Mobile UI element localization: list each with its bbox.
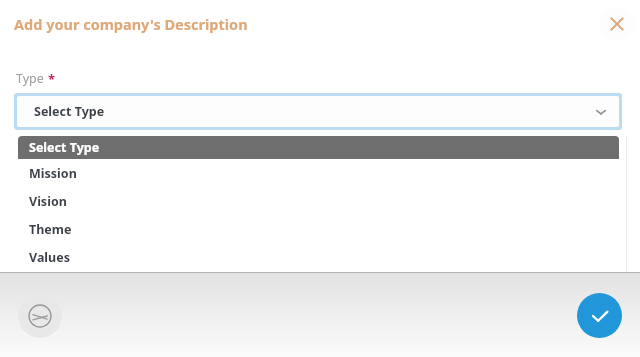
staticText: Type <box>16 70 44 87</box>
staticText: Add your company's Description <box>14 14 248 34</box>
staticText: Mission <box>29 165 77 182</box>
staticText: Select Type <box>34 103 105 120</box>
button[interactable]: Values <box>18 243 619 271</box>
staticText: Values <box>29 249 70 266</box>
staticText: Vision <box>29 193 67 210</box>
button[interactable]: Theme <box>18 215 619 243</box>
staticText: Theme <box>29 221 72 238</box>
button[interactable]: Close <box>600 7 634 41</box>
staticText: * <box>48 70 56 88</box>
button[interactable]: Confirm <box>577 293 622 338</box>
button[interactable]: Attachment <box>18 294 62 338</box>
button[interactable]: Vision <box>18 187 619 215</box>
staticText: Select Type <box>29 139 100 156</box>
button[interactable]: Mission <box>18 159 619 187</box>
button[interactable]: Select Type <box>18 136 619 159</box>
button[interactable]: Select Type <box>14 93 622 130</box>
